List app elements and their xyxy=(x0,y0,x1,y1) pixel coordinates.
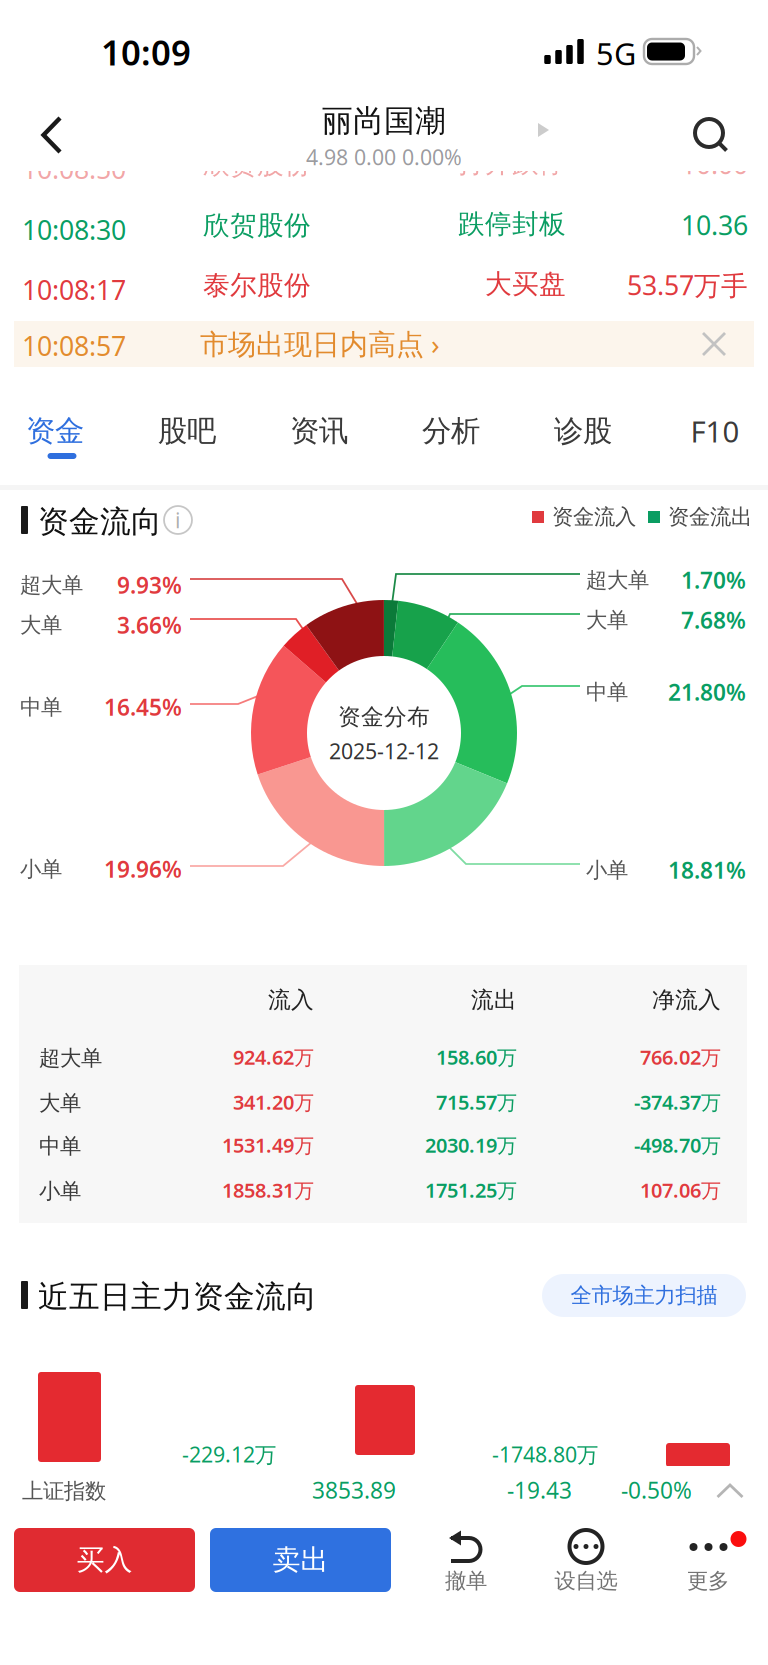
staticText: 1858.31万 xyxy=(222,1177,314,1203)
button[interactable]: 更多 xyxy=(650,1520,762,1602)
staticText: 资金 xyxy=(26,413,84,449)
staticText: 卖出 xyxy=(272,1543,328,1577)
staticText: 资金流向 xyxy=(38,503,162,541)
button[interactable]: 全市场主力扫描 xyxy=(542,1274,746,1317)
staticText: 2030.19万 xyxy=(425,1132,517,1158)
staticText: -498.70万 xyxy=(634,1132,721,1158)
button[interactable]: 股吧 xyxy=(121,398,253,468)
staticText: 53.57万手 xyxy=(627,267,748,303)
staticText: 16.45% xyxy=(104,692,182,722)
staticText: 资金分布 xyxy=(338,703,430,731)
staticText: 上证指数 xyxy=(22,1478,106,1504)
staticText: 10:08:57 xyxy=(22,328,126,363)
staticText: 9.93% xyxy=(117,570,182,600)
staticText: -1748.80万 xyxy=(492,1440,598,1468)
staticText: -19.43 xyxy=(507,1475,572,1505)
staticText: 766.02万 xyxy=(640,1044,721,1070)
staticText: 大单 xyxy=(586,607,628,633)
staticText: 超大单 xyxy=(39,1045,102,1071)
staticText: 924.62万 xyxy=(233,1044,314,1070)
staticText: 21.80% xyxy=(668,677,746,707)
button[interactable]: 诊股 xyxy=(517,398,649,468)
button[interactable]: 设自选 xyxy=(530,1520,642,1602)
staticText: -0.50% xyxy=(621,1475,692,1505)
staticText: 10:08:50 xyxy=(22,151,126,186)
staticText: 欣贺股份 xyxy=(203,148,311,181)
staticText: 中单 xyxy=(586,679,628,705)
staticText: 股吧 xyxy=(158,413,216,449)
staticText: 大买盘 xyxy=(485,268,566,300)
staticText: 10:08:17 xyxy=(22,272,126,307)
button[interactable]: 资讯 xyxy=(253,398,385,468)
staticText: -229.12万 xyxy=(182,1440,276,1468)
staticText: 3.66% xyxy=(117,610,182,640)
button[interactable]: 买入 xyxy=(14,1528,195,1592)
staticText: 超大单 xyxy=(586,567,649,593)
staticText: i xyxy=(175,506,181,534)
staticText: 10:09 xyxy=(101,29,191,75)
staticText: 全市场主力扫描 xyxy=(570,1282,717,1309)
staticText: 1751.25万 xyxy=(425,1177,517,1203)
staticText: 2025-12-12 xyxy=(329,737,439,765)
staticText: 大单 xyxy=(39,1090,81,1116)
staticText: 跌停封板 xyxy=(458,208,566,240)
button[interactable]: F10 xyxy=(649,398,768,468)
staticText: 10.00 xyxy=(681,146,748,182)
staticText: -374.37万 xyxy=(634,1089,721,1115)
staticText: 更多 xyxy=(687,1568,729,1594)
staticText: 大单 xyxy=(20,612,62,638)
button[interactable]: Back xyxy=(0,96,96,158)
staticText: 分析 xyxy=(422,413,480,449)
staticText: 18.81% xyxy=(668,855,746,885)
button[interactable]: 撤单 xyxy=(410,1520,522,1602)
button[interactable]: Close xyxy=(682,321,746,367)
staticText: 打开跌停 xyxy=(458,147,566,179)
staticText: 3853.89 xyxy=(312,1475,396,1505)
staticText: 158.60万 xyxy=(436,1044,517,1070)
staticText: 资金流入 xyxy=(552,504,636,530)
staticText: 超大单 xyxy=(20,572,83,598)
staticText: 107.06万 xyxy=(640,1177,721,1203)
staticText: 715.57万 xyxy=(436,1089,517,1115)
staticText: 欣贺股份 xyxy=(203,209,311,242)
button[interactable]: 卖出 xyxy=(210,1528,391,1592)
staticText: 近五日主力资金流向 xyxy=(38,1278,317,1316)
staticText: 丽尚国潮 xyxy=(322,102,446,140)
button[interactable]: 资金 xyxy=(0,398,121,468)
staticText: 撤单 xyxy=(445,1568,487,1594)
staticText: 中单 xyxy=(39,1133,81,1159)
staticText: 小单 xyxy=(39,1178,81,1204)
staticText: 流出 xyxy=(471,986,517,1014)
staticText: 买入 xyxy=(76,1543,132,1577)
staticText: 小单 xyxy=(586,857,628,883)
button[interactable]: Search xyxy=(672,96,768,158)
staticText: 5G xyxy=(596,33,636,74)
staticText: 341.20万 xyxy=(233,1089,314,1115)
staticText: 中单 xyxy=(20,694,62,720)
staticText: F10 xyxy=(690,411,739,450)
staticText: 10.36 xyxy=(681,207,748,243)
button[interactable]: Collapse xyxy=(698,1468,762,1514)
staticText: 19.96% xyxy=(104,854,182,884)
staticText: 泰尔股份 xyxy=(203,269,311,302)
staticText: 诊股 xyxy=(554,413,612,449)
staticText: 净流入 xyxy=(652,986,721,1014)
staticText: 10:08:30 xyxy=(22,212,126,247)
staticText: 7.68% xyxy=(681,605,746,635)
staticText: 设自选 xyxy=(554,1568,617,1594)
staticText: 资讯 xyxy=(290,413,348,449)
staticText: 1531.49万 xyxy=(222,1132,314,1158)
staticText: 4.98 0.00 0.00% xyxy=(306,143,462,171)
staticText: 小单 xyxy=(20,856,62,882)
staticText: 1.70% xyxy=(681,565,746,595)
button[interactable]: 分析 xyxy=(385,398,517,468)
staticText: 资金流出 xyxy=(668,504,752,530)
staticText: 市场出现日内高点 › xyxy=(200,325,440,362)
staticText: 流入 xyxy=(268,986,314,1014)
